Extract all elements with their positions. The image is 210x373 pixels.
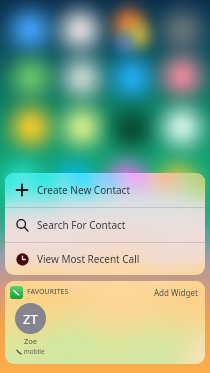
staticText: View Most Recent Call — [37, 252, 140, 266]
staticText: Create New Contact — [37, 183, 131, 197]
button[interactable]: Search For Contact — [5, 208, 205, 242]
staticText: Zoe — [24, 336, 38, 346]
staticText: ZT — [23, 310, 38, 328]
button[interactable]: ZT — [15, 303, 46, 334]
staticText: mobile — [22, 347, 45, 356]
staticText: FAVOURITES — [27, 287, 69, 297]
button[interactable]: Create New Contact — [5, 173, 205, 207]
button[interactable]: View Most Recent Call — [5, 243, 205, 275]
staticText: Search For Contact — [37, 218, 126, 232]
staticText: Add Widget — [154, 287, 198, 298]
button[interactable]: Add Widget — [154, 287, 198, 298]
